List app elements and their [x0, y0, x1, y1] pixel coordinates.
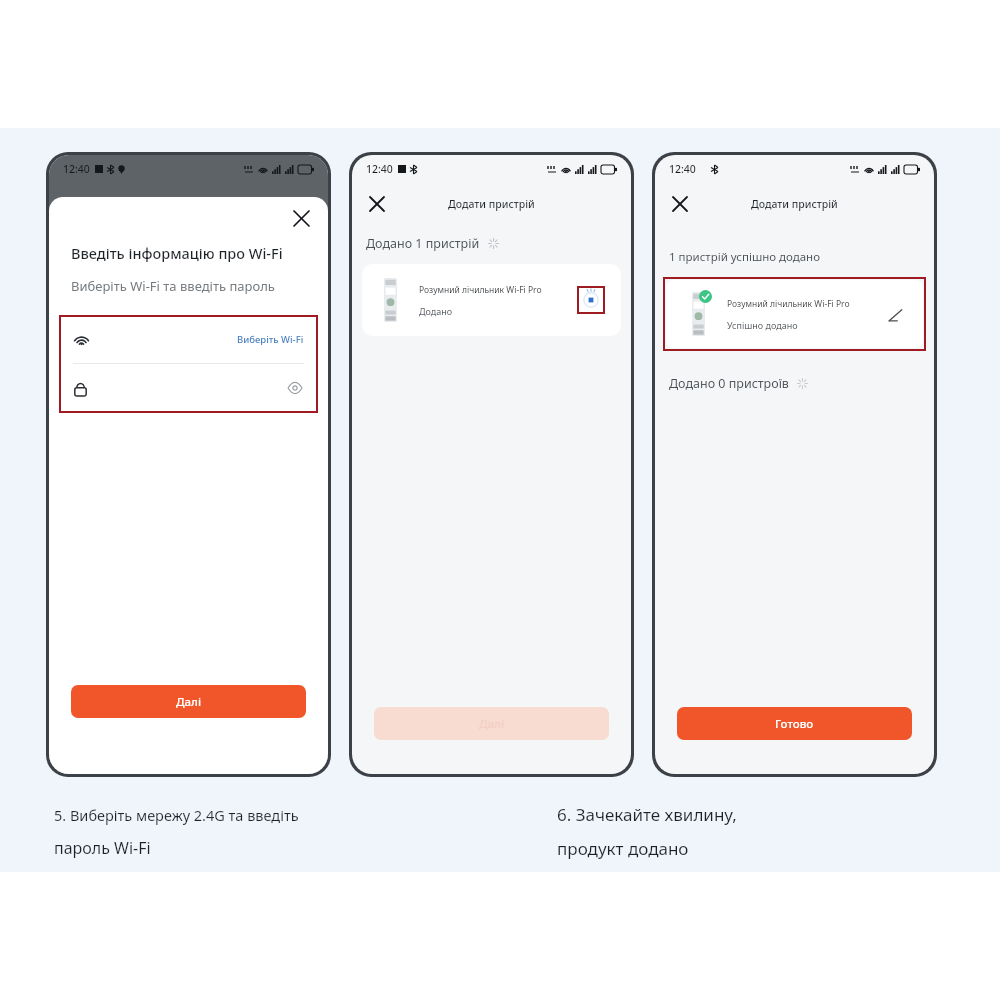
staticText: Додати пристрій [751, 197, 838, 211]
staticText: Додано 1 пристрій [366, 235, 480, 252]
button[interactable]: Розумний лічильник Wi-Fi Pro [666, 280, 923, 348]
staticText: Додано 0 пристроїв [669, 375, 789, 392]
staticText: Додано [419, 305, 453, 317]
staticText: Далі [479, 716, 505, 732]
staticText: 12:40 [669, 162, 696, 176]
button[interactable]: Редагувати [885, 304, 905, 324]
button[interactable]: Показати пароль [73, 364, 304, 412]
staticText: Розумний лічильник Wi-Fi Pro [727, 298, 850, 310]
staticText: 1 пристрій успішно додано [669, 249, 821, 265]
staticText: Розумний лічильник Wi-Fi Pro [419, 284, 542, 296]
button[interactable]: Розумний лічильник Wi-Fi Pro [362, 264, 621, 336]
staticText: Додати пристрій [448, 197, 535, 211]
staticText: Введіть інформацію про Wi-Fi [71, 243, 283, 263]
staticText: продукт додано [557, 837, 689, 860]
button[interactable]: Налаштувати [581, 290, 601, 310]
staticText: 5. Виберіть мережу 2.4G та введіть [54, 805, 299, 825]
button[interactable]: Далі [374, 707, 609, 740]
staticText: Готово [775, 716, 814, 732]
button[interactable]: Готово [677, 707, 912, 740]
button[interactable]: Виберіть Wi-Fi [73, 315, 304, 363]
staticText: Виберіть Wi-Fi та введіть пароль [71, 277, 275, 295]
staticText: Успішно додано [727, 319, 798, 331]
staticText: Виберіть Wi-Fi [237, 333, 304, 346]
staticText: 12:40 [63, 162, 90, 176]
staticText: 6. Зачекайте хвилину, [557, 803, 737, 826]
button[interactable]: Далі [71, 685, 306, 718]
button[interactable]: Показати пароль [286, 379, 304, 397]
staticText: пароль Wi-Fi [54, 837, 151, 859]
button[interactable]: Закрити [288, 205, 314, 231]
staticText: 12:40 [366, 162, 393, 176]
button[interactable]: Закрити [667, 191, 693, 217]
staticText: Далі [176, 694, 202, 710]
button[interactable]: Закрити [364, 191, 390, 217]
